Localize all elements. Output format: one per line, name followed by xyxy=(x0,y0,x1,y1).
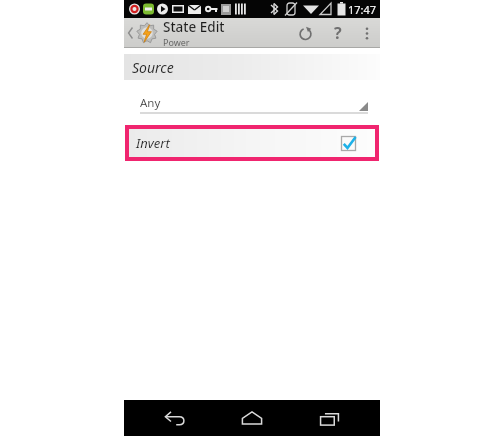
staticText: 17:47 xyxy=(348,2,377,17)
staticText: Any xyxy=(140,95,161,111)
staticText: State Edit xyxy=(163,18,225,36)
staticText: Power xyxy=(163,36,190,48)
button[interactable]: Help xyxy=(322,18,354,48)
button[interactable]: Home xyxy=(230,400,274,436)
staticText: Invert xyxy=(136,134,170,152)
staticText: ? xyxy=(334,22,342,44)
button[interactable]: Revert xyxy=(288,18,322,48)
staticText: Source xyxy=(132,58,174,77)
button[interactable]: Back xyxy=(153,400,197,436)
button[interactable]: Any xyxy=(140,92,368,114)
button[interactable]: Invert xyxy=(129,129,375,157)
button[interactable]: State Edit xyxy=(124,18,225,48)
button[interactable]: More options xyxy=(354,18,380,48)
button[interactable]: Recent apps xyxy=(307,400,351,436)
